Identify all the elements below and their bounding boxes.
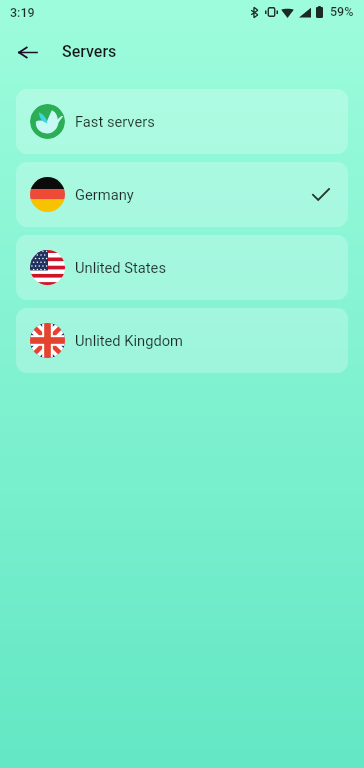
button[interactable]: Unlited Kingdom bbox=[16, 308, 348, 373]
button[interactable]: Germany bbox=[16, 162, 348, 227]
staticText: 3:19 bbox=[10, 5, 35, 20]
staticText: 59% bbox=[330, 4, 354, 19]
button[interactable]: Unlited States bbox=[16, 235, 348, 300]
staticText: Unlited States bbox=[75, 259, 166, 276]
staticText: Unlited Kingdom bbox=[75, 332, 183, 349]
staticText: Germany bbox=[75, 186, 134, 203]
staticText: Servers bbox=[62, 42, 117, 61]
button[interactable]: Back bbox=[10, 34, 46, 70]
staticText: Fast servers bbox=[75, 113, 155, 130]
button[interactable]: Fast servers bbox=[16, 89, 348, 154]
